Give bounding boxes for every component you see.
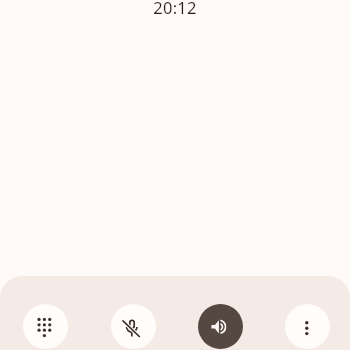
button[interactable]: Dialpad [23,304,68,349]
staticText: 20:12 [153,0,197,18]
button[interactable]: Mute [111,304,156,349]
button[interactable]: Speaker [198,304,243,349]
button[interactable]: More options [285,304,330,349]
